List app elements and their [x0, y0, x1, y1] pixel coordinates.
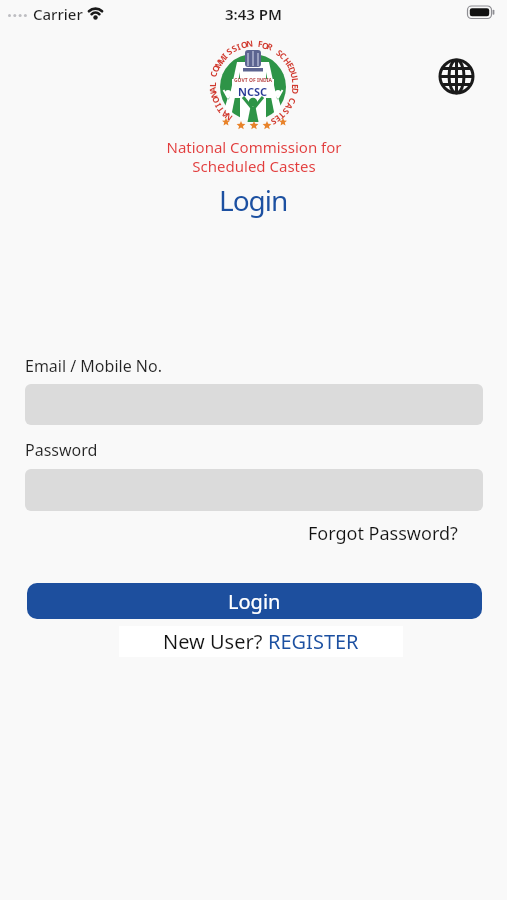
staticText: C — [207, 69, 221, 78]
button[interactable]: Forgot Password? — [357, 521, 507, 546]
staticText: Email / Mobile No. — [25, 355, 162, 377]
staticText: Password — [25, 439, 98, 461]
staticText: Forgot Password? — [308, 521, 458, 546]
staticText: S — [279, 106, 292, 117]
staticText: I — [235, 41, 243, 53]
button[interactable]: Login — [27, 583, 482, 619]
staticText: N — [245, 38, 254, 50]
staticText: O — [260, 39, 270, 53]
button[interactable] — [437, 57, 476, 96]
staticText: NCSC — [238, 84, 268, 99]
staticText: A — [282, 100, 296, 112]
staticText: D — [288, 87, 301, 96]
staticText: 3:43 PM — [225, 4, 282, 24]
staticText: U — [287, 71, 301, 80]
staticText: F — [257, 38, 264, 50]
staticText: O — [209, 63, 223, 74]
staticText: M — [212, 57, 227, 70]
staticText: I — [212, 100, 224, 110]
staticText: GOVT OF INDIA — [234, 77, 273, 84]
button[interactable]: New User? — [119, 626, 403, 657]
staticText: M — [215, 52, 230, 67]
staticText: S — [224, 45, 235, 58]
staticText: Login — [228, 588, 281, 615]
staticText: S — [229, 42, 239, 55]
staticText: T — [214, 104, 227, 115]
staticText: R — [265, 40, 275, 54]
staticText: N — [207, 90, 221, 99]
staticText: N — [222, 110, 235, 124]
staticText: National Commission for Scheduled Castes — [166, 137, 342, 176]
staticText: E — [272, 112, 283, 125]
staticText: Login — [219, 181, 288, 219]
staticText: A — [207, 86, 219, 94]
staticText: E — [289, 84, 301, 89]
staticText: T — [276, 109, 288, 121]
staticText: L — [289, 77, 301, 84]
staticText: C — [285, 96, 299, 106]
staticText: New User? — [163, 628, 268, 655]
staticText: I — [219, 50, 231, 62]
staticText: O — [209, 94, 223, 105]
staticText: REGISTER — [268, 628, 359, 655]
staticText: H — [280, 55, 294, 68]
staticText: A — [219, 108, 231, 120]
staticText: C — [277, 50, 289, 62]
staticText: D — [285, 65, 299, 76]
staticText: Carrier — [33, 4, 83, 24]
staticText: L — [207, 82, 219, 87]
staticText: S — [268, 115, 279, 128]
staticText: O — [240, 38, 249, 52]
staticText: S — [274, 47, 285, 60]
staticText: E — [284, 60, 297, 70]
